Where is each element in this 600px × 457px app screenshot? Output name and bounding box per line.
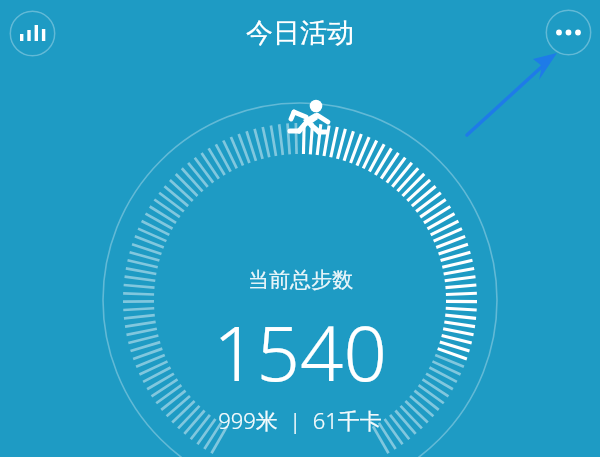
- staticText: 今日活动: [246, 16, 354, 50]
- staticText: 当前总步数: [248, 267, 353, 293]
- staticText: 999米 | 61千卡: [218, 405, 382, 435]
- button[interactable]: Statistics: [9, 10, 56, 57]
- button[interactable]: More options: [545, 9, 592, 56]
- staticText: 1540: [213, 300, 387, 404]
